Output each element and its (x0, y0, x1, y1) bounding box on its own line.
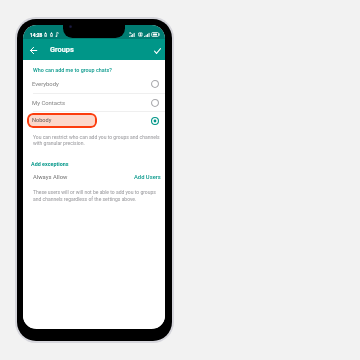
staticText: You can restrict who can add you to grou… (33, 134, 165, 147)
staticText: My Contacts (32, 100, 66, 107)
staticText: 14:28 (30, 32, 43, 38)
staticText: Add exceptions (31, 161, 69, 167)
staticText: Nobody (32, 117, 52, 124)
button[interactable]: Everybody (23, 75, 165, 93)
staticText: These users will or will not be able to … (33, 189, 165, 202)
staticText: Who can add me to group chats? (33, 67, 112, 73)
staticText: Everybody (32, 81, 59, 88)
button[interactable]: Back (26, 43, 41, 58)
button[interactable]: My Contacts (23, 94, 165, 112)
button[interactable]: Nobody (27, 113, 97, 128)
staticText: Add Users (134, 174, 161, 181)
button[interactable]: Always Allow (23, 172, 165, 183)
staticText: Groups (50, 45, 74, 54)
staticText: Always Allow (33, 174, 68, 181)
button[interactable]: Save (150, 43, 165, 58)
